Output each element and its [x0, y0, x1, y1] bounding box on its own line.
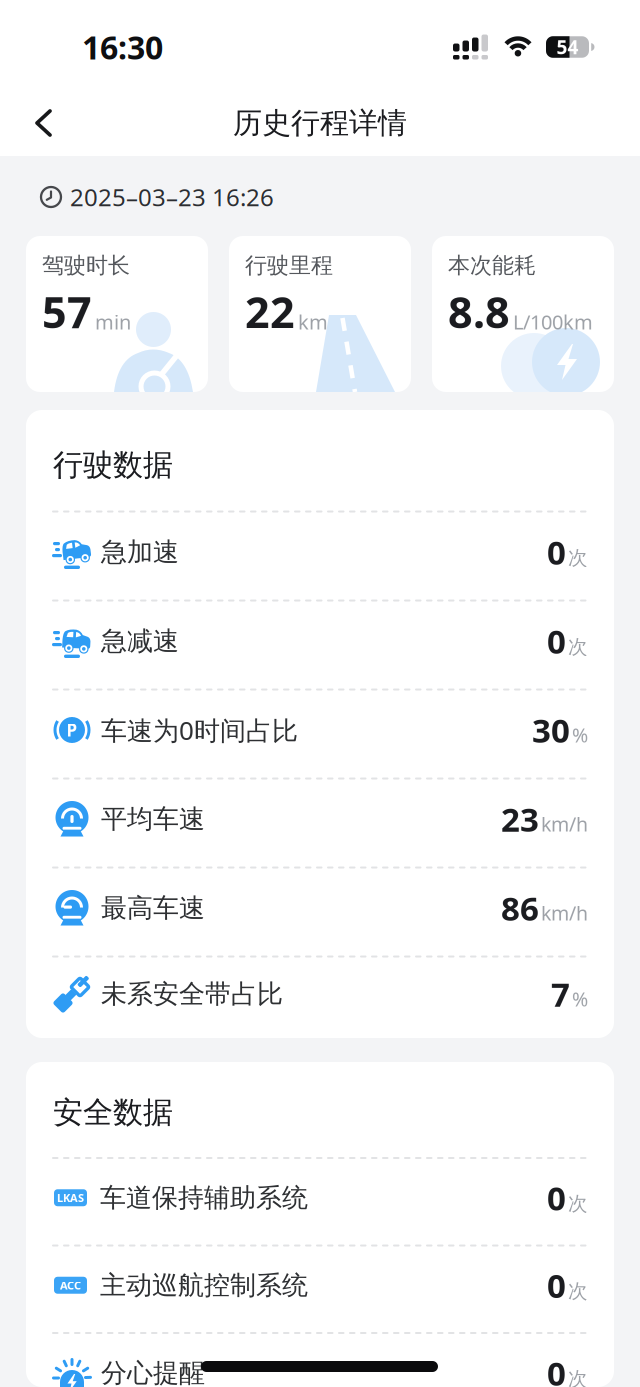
staticText: min: [95, 309, 131, 335]
staticText: 次: [568, 546, 588, 570]
staticText: 次: [568, 1192, 588, 1216]
staticText: 急减速: [101, 625, 179, 657]
staticText: 平均车速: [101, 803, 205, 835]
staticText: 8.8: [448, 283, 510, 340]
staticText: 未系安全带占比: [101, 978, 283, 1010]
staticText: 0: [547, 530, 566, 574]
staticText: 54: [556, 34, 578, 60]
staticText: 主动巡航控制系统: [100, 1269, 308, 1301]
staticText: 2025–03–23 16:26: [70, 181, 274, 213]
staticText: 0: [547, 1176, 566, 1220]
staticText: 行驶数据: [53, 447, 173, 483]
button[interactable]: Back: [0, 101, 54, 145]
staticText: %: [572, 722, 588, 748]
staticText: 次: [568, 1367, 588, 1387]
staticText: 最高车速: [101, 892, 205, 924]
staticText: 车道保持辅助系统: [100, 1182, 308, 1214]
staticText: 22: [245, 283, 295, 340]
staticText: 车速为0时间占比: [101, 713, 298, 747]
staticText: 0: [547, 619, 566, 663]
staticText: P: [66, 719, 77, 741]
staticText: 7: [551, 972, 570, 1016]
staticText: 本次能耗: [448, 252, 536, 279]
staticText: 驾驶时长: [42, 252, 130, 279]
staticText: 30: [532, 708, 570, 752]
staticText: L/100km: [513, 309, 593, 335]
staticText: 行驶里程: [245, 252, 333, 279]
staticText: %: [572, 986, 588, 1012]
staticText: 0: [547, 1263, 566, 1307]
staticText: 分心提醒: [101, 1357, 205, 1387]
staticText: 23: [501, 797, 539, 841]
staticText: 安全数据: [53, 1094, 173, 1131]
staticText: km/h: [541, 900, 588, 926]
staticText: LKAS: [57, 1190, 84, 1205]
staticText: ACC: [60, 1278, 81, 1292]
staticText: 0: [547, 1351, 566, 1387]
staticText: 16:30: [82, 26, 163, 68]
staticText: 历史行程详情: [233, 105, 407, 141]
staticText: km/h: [541, 811, 588, 837]
staticText: 86: [501, 886, 539, 930]
staticText: 急加速: [101, 536, 179, 568]
staticText: 次: [568, 1279, 588, 1303]
staticText: km: [298, 309, 328, 335]
staticText: 57: [42, 283, 92, 340]
staticText: 次: [568, 635, 588, 659]
